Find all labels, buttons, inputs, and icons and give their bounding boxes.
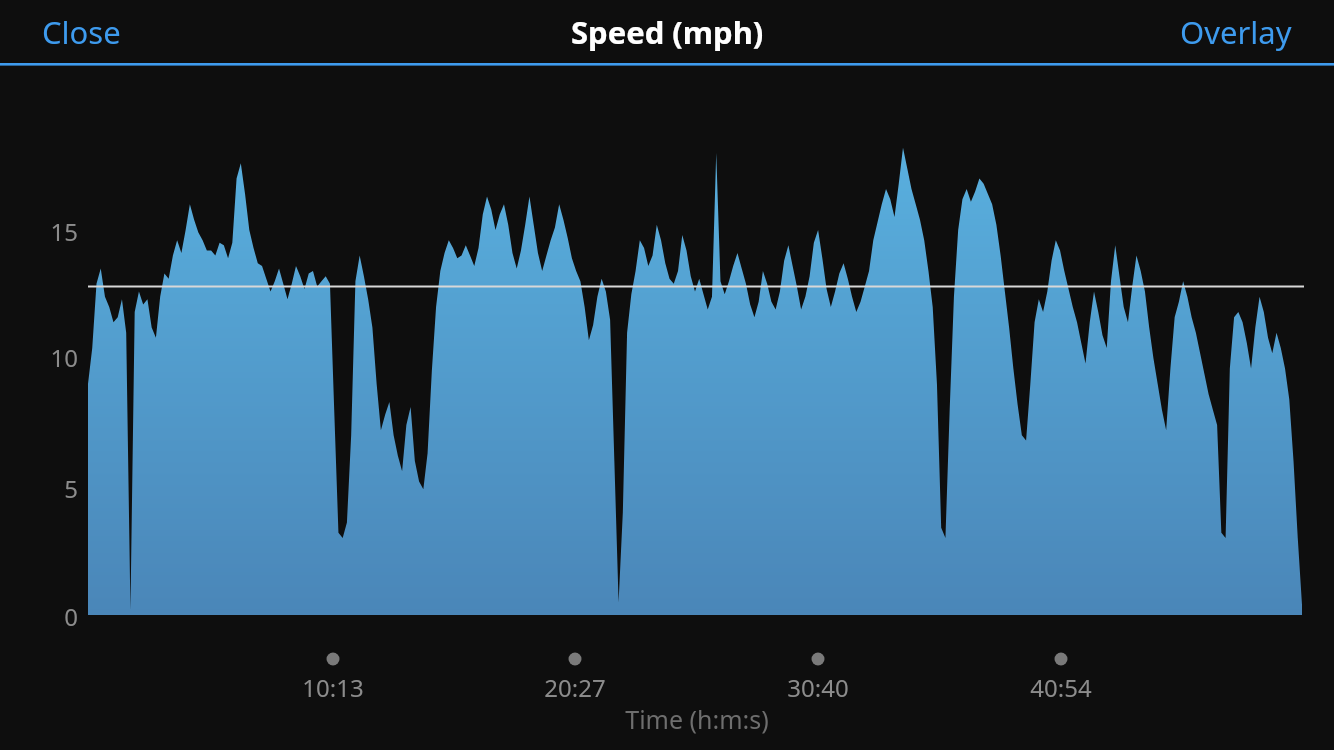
staticText: Overlay bbox=[1180, 11, 1292, 53]
staticText: Close bbox=[42, 11, 121, 53]
staticText: 30:40 bbox=[748, 671, 888, 703]
staticText: Speed (mph) bbox=[571, 11, 764, 53]
staticText: 5 bbox=[0, 472, 78, 502]
staticText: 20:27 bbox=[505, 671, 645, 703]
button[interactable]: Overlay bbox=[1192, 11, 1304, 53]
staticText: Time (h:m:s) bbox=[597, 702, 797, 738]
staticText: 15 bbox=[0, 215, 78, 245]
staticText: 0 bbox=[0, 600, 78, 630]
staticText: 40:54 bbox=[991, 671, 1131, 703]
button[interactable]: Close bbox=[30, 11, 109, 53]
staticText: 10 bbox=[0, 341, 78, 371]
staticText: 10:13 bbox=[263, 671, 403, 703]
